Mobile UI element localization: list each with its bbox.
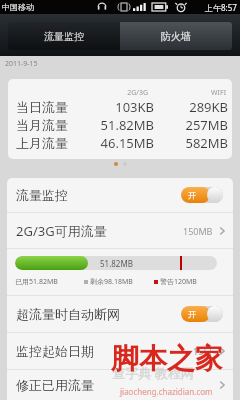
staticText: 51.82MB: [100, 258, 133, 269]
staticText: 查字典 教程网: [112, 364, 194, 382]
staticText: 257MB: [154, 116, 228, 134]
staticText: 开: [188, 309, 196, 319]
staticText: 当日流量: [16, 99, 68, 115]
staticText: WIFI: [151, 88, 226, 98]
staticText: 防火墙: [161, 30, 191, 43]
staticText: 中国移动: [2, 2, 34, 12]
staticText: 150MB: [183, 225, 213, 237]
staticText: 当月流量: [16, 117, 68, 133]
staticText: 上月流量: [16, 135, 68, 151]
button[interactable]: 流量监控: [7, 178, 233, 212]
staticText: 582MB: [154, 134, 228, 152]
staticText: 46.15MB: [68, 134, 154, 152]
other: Toggle on: [181, 187, 223, 203]
staticText: 警告120MB: [160, 277, 197, 287]
staticText: 超流量时自动断网: [16, 306, 120, 322]
staticText: 2011-9-15: [5, 59, 38, 69]
staticText: 2G/3G可用流量: [16, 222, 107, 240]
staticText: 开: [188, 190, 196, 200]
button[interactable]: 超流量时自动断网: [7, 296, 233, 332]
staticText: 修正已用流量: [16, 377, 94, 393]
button[interactable]: 流量监控: [8, 22, 120, 50]
staticText: 监控起始日期: [16, 343, 94, 359]
staticText: 流量监控: [16, 187, 68, 203]
button[interactable]: 2G/3G可用流量: [7, 213, 233, 248]
staticText: 剩余98.18MB: [90, 277, 133, 287]
staticText: 15日: [193, 345, 213, 357]
button[interactable]: 修正已用流量: [7, 370, 233, 400]
staticText: 2G/3G: [70, 88, 148, 98]
staticText: 上午8:57: [205, 2, 237, 13]
other: Toggle on: [181, 306, 223, 322]
staticText: 已用51.82MB: [15, 277, 58, 287]
button[interactable]: 防火墙: [120, 22, 232, 50]
staticText: 脚本之家: [111, 341, 223, 376]
staticText: 51.82MB: [68, 116, 154, 134]
staticText: 流量监控: [44, 30, 84, 43]
button[interactable]: 监控起始日期: [7, 333, 233, 369]
staticText: 103KB: [68, 98, 154, 116]
staticText: 289KB: [154, 98, 228, 116]
staticText: jiaocheng.chazidian.com: [120, 386, 213, 397]
